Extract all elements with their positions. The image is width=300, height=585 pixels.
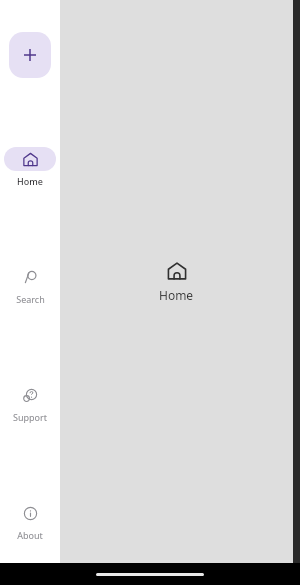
staticText: Home [159, 287, 194, 303]
staticText: Support [13, 411, 47, 423]
button[interactable]: Home [0, 145, 60, 189]
button[interactable]: Search [0, 263, 60, 307]
staticText: Search [16, 293, 45, 305]
button[interactable]: Add [9, 32, 51, 78]
staticText: Home [17, 175, 43, 187]
button[interactable]: Support [0, 381, 60, 425]
staticText: About [17, 529, 43, 541]
button[interactable]: About [0, 499, 60, 543]
